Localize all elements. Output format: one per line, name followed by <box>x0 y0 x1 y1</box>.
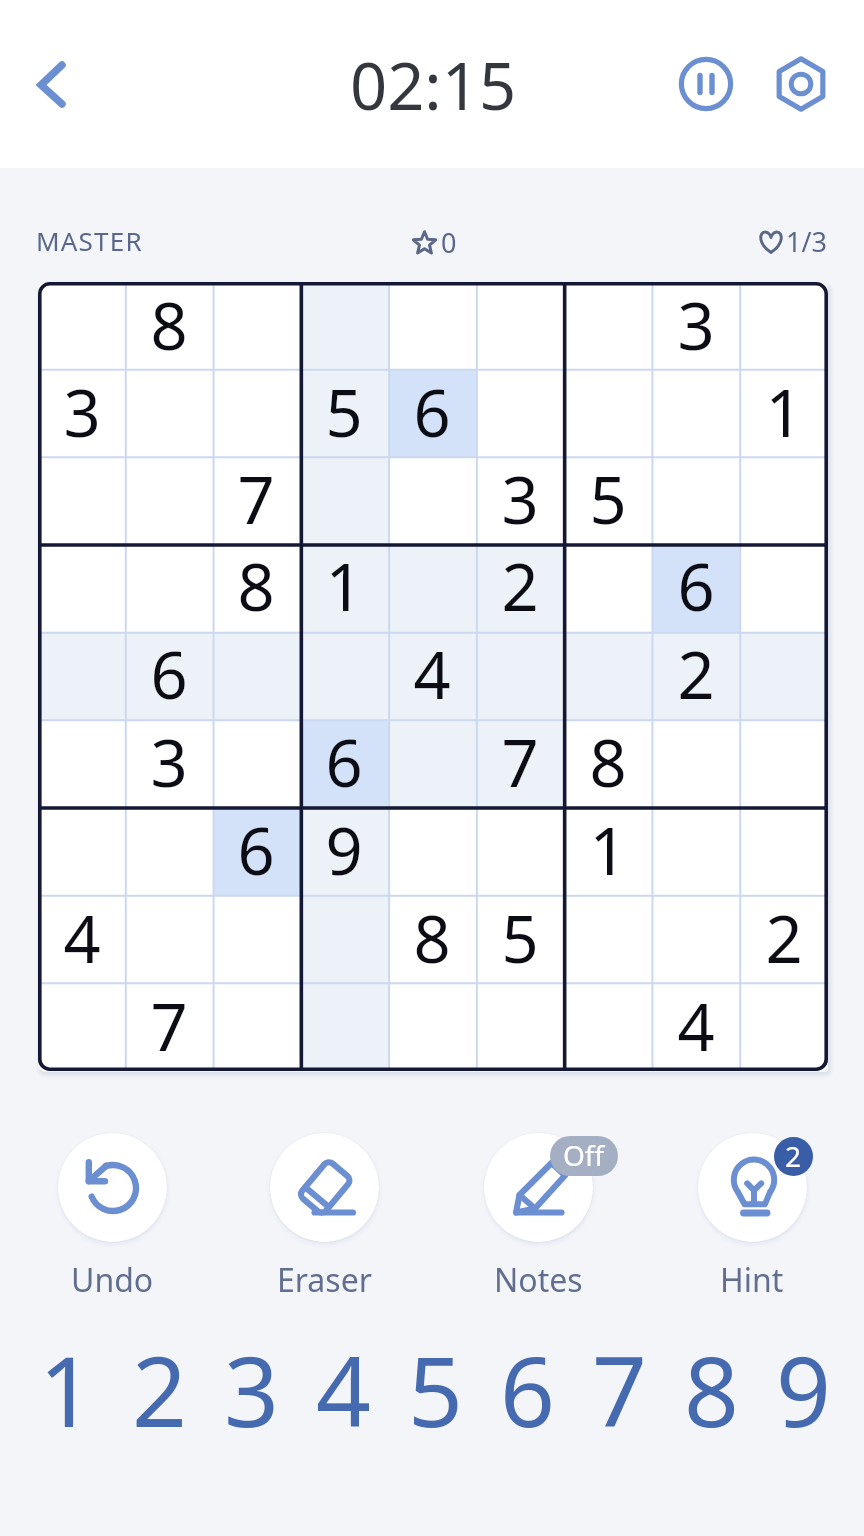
button[interactable] <box>300 895 388 983</box>
button[interactable]: 1 <box>300 543 388 631</box>
button[interactable] <box>212 631 300 719</box>
button[interactable] <box>740 456 828 543</box>
button[interactable] <box>740 282 828 369</box>
button[interactable]: 3 <box>38 369 125 456</box>
button[interactable]: 2 <box>113 1324 205 1444</box>
button[interactable]: 9 <box>757 1324 849 1444</box>
button[interactable] <box>38 282 125 369</box>
button[interactable]: 2 <box>740 895 828 983</box>
button[interactable] <box>300 983 388 1071</box>
button[interactable] <box>564 543 652 631</box>
button[interactable]: 3 <box>205 1324 297 1444</box>
button[interactable]: 2 <box>476 543 564 631</box>
button[interactable] <box>652 369 740 456</box>
button[interactable]: 6 <box>300 719 388 807</box>
button[interactable]: 6 <box>481 1324 573 1444</box>
button[interactable]: 7 <box>476 719 564 807</box>
button[interactable]: 8 <box>665 1324 757 1444</box>
staticText: 4 <box>316 1324 371 1444</box>
button[interactable] <box>476 807 564 895</box>
button[interactable]: 3 <box>652 282 740 369</box>
button[interactable] <box>38 456 125 543</box>
button[interactable]: 3 <box>476 456 564 543</box>
button[interactable] <box>212 369 300 456</box>
button[interactable]: 7 <box>212 456 300 543</box>
button[interactable] <box>38 631 125 719</box>
button[interactable] <box>564 282 652 369</box>
button[interactable]: 5 <box>389 1324 481 1444</box>
button[interactable] <box>564 369 652 456</box>
button[interactable]: 4 <box>38 895 125 983</box>
button[interactable]: 3 <box>125 719 212 807</box>
button[interactable] <box>388 282 476 369</box>
button[interactable] <box>38 807 125 895</box>
button[interactable] <box>125 895 212 983</box>
button[interactable] <box>212 719 300 807</box>
button[interactable] <box>125 456 212 543</box>
button[interactable]: 5 <box>564 456 652 543</box>
staticText: 8 <box>237 542 275 630</box>
button[interactable]: 8 <box>212 543 300 631</box>
button[interactable]: Back <box>6 50 76 120</box>
button[interactable]: 5 <box>300 369 388 456</box>
button[interactable] <box>388 456 476 543</box>
button[interactable]: Undo <box>32 1133 192 1293</box>
button[interactable] <box>476 983 564 1071</box>
button[interactable] <box>38 543 125 631</box>
button[interactable] <box>125 807 212 895</box>
button[interactable]: 1 <box>740 369 828 456</box>
staticText: 5 <box>589 455 627 542</box>
button[interactable] <box>300 456 388 543</box>
button[interactable] <box>740 719 828 807</box>
button[interactable]: 7 <box>573 1324 665 1444</box>
button[interactable]: Notes <box>458 1133 618 1293</box>
button[interactable] <box>388 543 476 631</box>
button[interactable]: 8 <box>564 719 652 807</box>
button[interactable] <box>212 983 300 1071</box>
button[interactable]: 4 <box>652 983 740 1071</box>
button[interactable] <box>652 719 740 807</box>
button[interactable]: 2 <box>652 631 740 719</box>
button[interactable]: 1 <box>20 1324 113 1444</box>
button[interactable]: Hint <box>672 1133 832 1293</box>
button[interactable]: 6 <box>388 369 476 456</box>
button[interactable] <box>476 369 564 456</box>
button[interactable] <box>212 282 300 369</box>
button[interactable] <box>212 895 300 983</box>
button[interactable] <box>300 282 388 369</box>
button[interactable]: 4 <box>297 1324 389 1444</box>
button[interactable]: 8 <box>125 282 212 369</box>
button[interactable] <box>38 983 125 1071</box>
button[interactable] <box>740 983 828 1071</box>
button[interactable] <box>125 543 212 631</box>
button[interactable]: 4 <box>388 631 476 719</box>
button[interactable] <box>476 282 564 369</box>
button[interactable]: 6 <box>212 807 300 895</box>
button[interactable] <box>388 807 476 895</box>
button[interactable] <box>652 807 740 895</box>
button[interactable]: 9 <box>300 807 388 895</box>
button[interactable] <box>388 719 476 807</box>
button[interactable]: 1 <box>564 807 652 895</box>
button[interactable] <box>476 631 564 719</box>
button[interactable] <box>740 631 828 719</box>
button[interactable] <box>564 895 652 983</box>
button[interactable] <box>652 895 740 983</box>
button[interactable] <box>564 631 652 719</box>
button[interactable] <box>564 983 652 1071</box>
button[interactable] <box>740 543 828 631</box>
button[interactable]: 6 <box>125 631 212 719</box>
button[interactable] <box>740 807 828 895</box>
button[interactable]: Pause <box>670 48 742 120</box>
button[interactable]: 5 <box>476 895 564 983</box>
button[interactable]: 6 <box>652 543 740 631</box>
button[interactable]: Settings <box>765 48 837 120</box>
button[interactable] <box>38 719 125 807</box>
button[interactable] <box>125 369 212 456</box>
button[interactable]: 7 <box>125 983 212 1071</box>
button[interactable]: 8 <box>388 895 476 983</box>
button[interactable] <box>300 631 388 719</box>
button[interactable] <box>652 456 740 543</box>
button[interactable] <box>388 983 476 1071</box>
button[interactable]: Eraser <box>244 1133 404 1293</box>
